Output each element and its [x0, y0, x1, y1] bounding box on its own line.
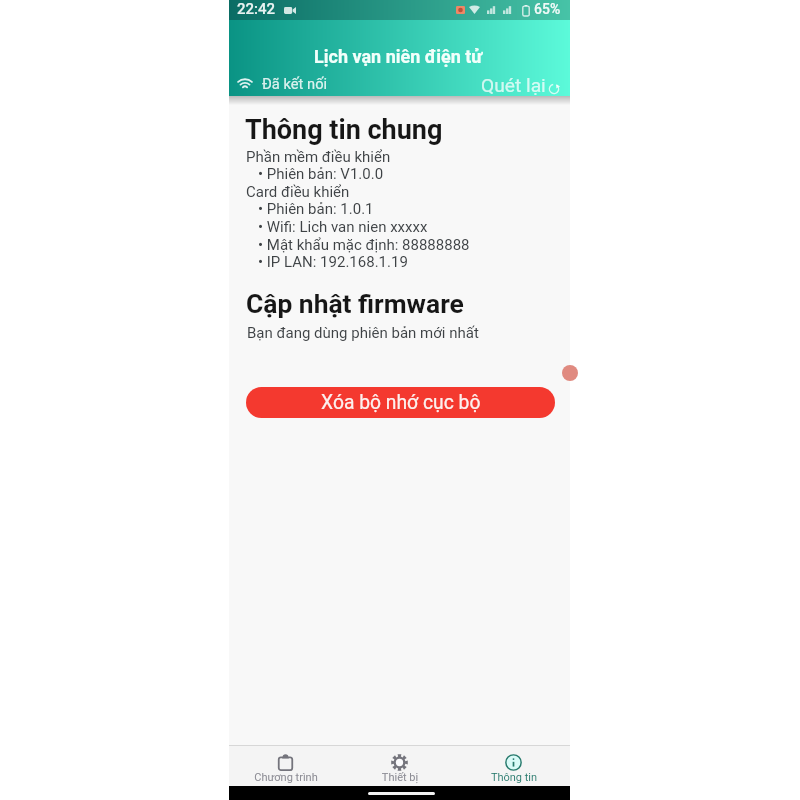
staticText: Bạn đang dùng phiên bản mới nhất — [247, 324, 479, 342]
staticText: • Mật khẩu mặc định: 88888888 — [258, 236, 470, 254]
staticText: • Phiên bản: V1.0.0 — [258, 165, 384, 183]
staticText: 22:42 — [237, 0, 276, 18]
other: Wifi — [237, 77, 253, 89]
staticText: Card điều khiển — [246, 183, 350, 201]
button[interactable]: Quét lại — [474, 70, 566, 95]
staticText: Thông tin chung — [245, 114, 443, 146]
staticText: Cập nhật firmware — [246, 289, 464, 320]
staticText: • Wifi: Lich van nien xxxxx — [258, 218, 428, 236]
staticText: Lịch vạn niên điện tử — [314, 46, 483, 67]
button[interactable]: Xóa bộ nhớ cục bộ — [246, 387, 555, 418]
button[interactable]: Thiết bị — [343, 747, 457, 787]
staticText: Đã kết nối — [262, 75, 328, 92]
staticText: Thiết bị — [343, 771, 457, 784]
staticText: Chương trình — [229, 771, 343, 784]
staticText: Phần mềm điều khiển — [246, 148, 391, 166]
staticText: Xóa bộ nhớ cục bộ — [321, 391, 481, 414]
other: Quét lại — [548, 83, 560, 95]
staticText: 65% — [534, 1, 561, 17]
staticText: Quét lại — [481, 74, 546, 97]
staticText: • IP LAN: 192.168.1.19 — [258, 253, 408, 271]
staticText: Thông tin — [457, 771, 571, 784]
button[interactable]: Chương trình — [229, 747, 343, 787]
button[interactable]: Thông tin — [457, 747, 571, 787]
staticText: • Phiên bản: 1.0.1 — [258, 200, 374, 218]
